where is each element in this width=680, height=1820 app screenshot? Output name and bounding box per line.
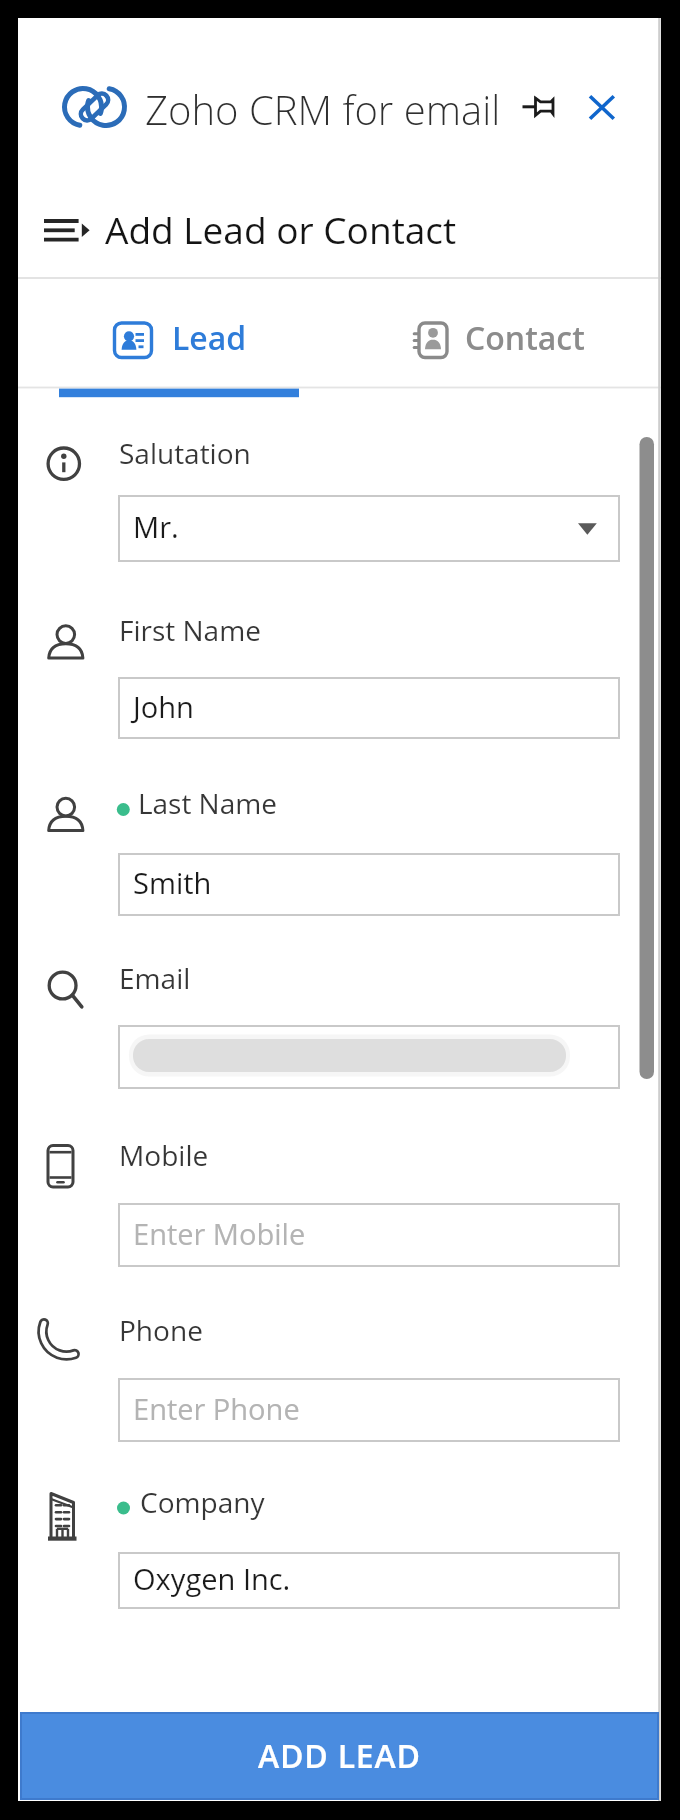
staticText: Lead bbox=[172, 316, 247, 360]
staticText: Smith bbox=[133, 863, 212, 902]
staticText: Add Lead or Contact bbox=[105, 204, 456, 252]
button[interactable]: Enter Mobile bbox=[118, 1203, 620, 1267]
button[interactable]: Oxygen Inc. bbox=[118, 1552, 620, 1609]
staticText: Zoho CRM for email bbox=[145, 82, 501, 130]
staticText: Contact bbox=[465, 316, 585, 360]
staticText: Company bbox=[140, 1483, 265, 1521]
staticText: Enter Mobile bbox=[133, 1214, 306, 1253]
button[interactable] bbox=[514, 88, 566, 128]
staticText: John bbox=[133, 687, 194, 726]
button[interactable]: Lead bbox=[106, 312, 302, 370]
button[interactable]: John bbox=[118, 677, 620, 739]
staticText: Last Name bbox=[138, 784, 278, 822]
staticText: Mobile bbox=[119, 1136, 209, 1174]
staticText: Email bbox=[119, 959, 191, 997]
staticText: Enter Phone bbox=[133, 1389, 300, 1428]
button[interactable] bbox=[36, 210, 98, 250]
staticText: Phone bbox=[119, 1311, 203, 1349]
button[interactable] bbox=[576, 82, 626, 132]
staticText: ADD LEAD bbox=[258, 1734, 421, 1778]
staticText: Mr. bbox=[133, 507, 179, 546]
button[interactable]: Enter Phone bbox=[118, 1378, 620, 1442]
staticText: Oxygen Inc. bbox=[133, 1559, 291, 1598]
button[interactable]: Smith bbox=[118, 853, 620, 916]
button[interactable]: Contact bbox=[406, 312, 626, 370]
button[interactable]: ADD LEAD bbox=[20, 1712, 659, 1800]
button[interactable]: Mr. bbox=[118, 495, 620, 562]
button[interactable] bbox=[118, 1025, 620, 1089]
staticText: First Name bbox=[119, 611, 261, 649]
staticText: Salutation bbox=[119, 434, 251, 472]
